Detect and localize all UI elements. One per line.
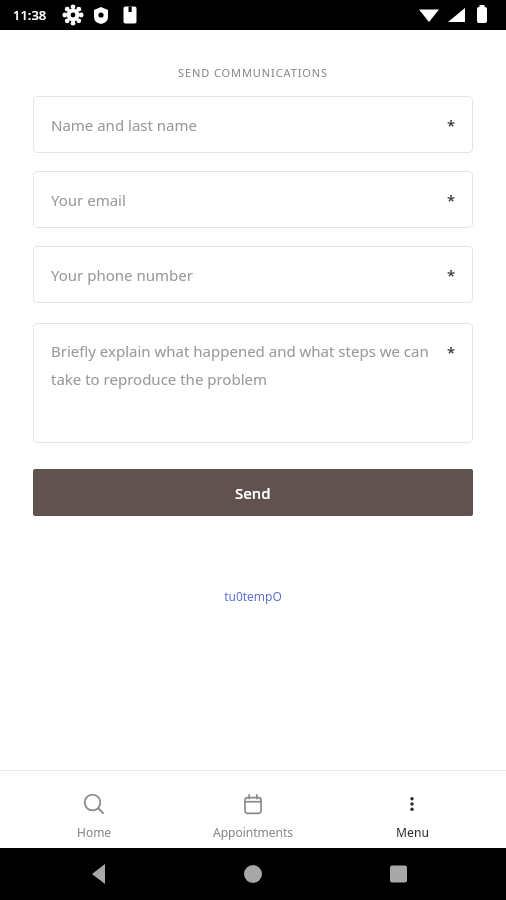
button[interactable]: Menu (347, 779, 477, 840)
button[interactable]: Name and last name (33, 96, 473, 153)
button[interactable]: tu0tempO (0, 588, 506, 604)
button[interactable]: Home (29, 779, 159, 840)
button[interactable]: Your phone number (33, 246, 473, 303)
staticText: Menu (396, 824, 429, 840)
button[interactable]: Your email (33, 171, 473, 228)
staticText: * (447, 265, 456, 285)
staticText: Home (77, 824, 112, 840)
staticText: Your email (51, 190, 126, 210)
button[interactable]: Briefly explain what happened and what s… (33, 323, 473, 443)
staticText: Send (235, 483, 271, 503)
staticText: 11:38 (13, 6, 47, 24)
button[interactable]: Send (33, 469, 473, 516)
staticText: Briefly explain what happened and what s… (51, 341, 431, 389)
staticText: Appointments (213, 824, 294, 840)
staticText: * (447, 190, 456, 210)
staticText: SEND COMMUNICATIONS (0, 65, 506, 80)
staticText: Your phone number (51, 265, 193, 285)
staticText: * (447, 115, 456, 135)
button[interactable]: Appointments (188, 779, 318, 840)
staticText: Name and last name (51, 115, 197, 135)
staticText: * (447, 342, 456, 362)
